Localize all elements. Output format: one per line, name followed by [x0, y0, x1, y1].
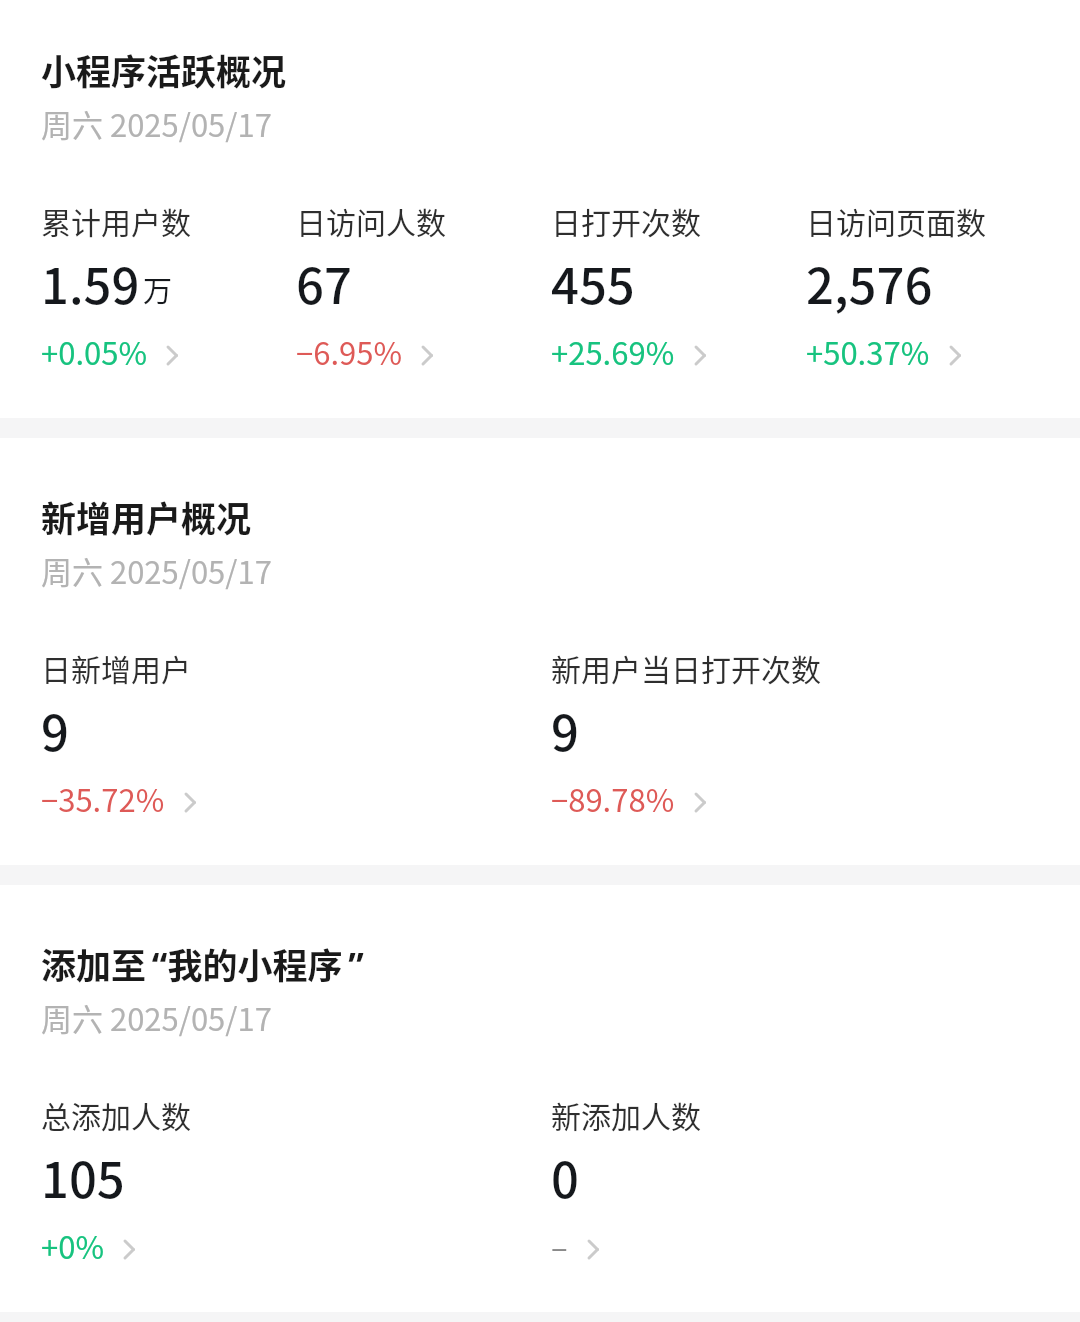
button[interactable]: 累计用户数 1.59+0.05% — [41, 199, 296, 374]
staticText: 万 — [143, 268, 173, 310]
staticText: +0.05% — [41, 329, 147, 374]
staticText: 新添加人数 — [551, 1093, 701, 1136]
button[interactable]: 日访问页面数 2,576+50.37% — [806, 199, 1061, 374]
staticText: 累计用户数 — [41, 199, 191, 242]
staticText: 周六 2025/05/17 — [41, 548, 272, 593]
staticText: 新增用户概况 — [41, 491, 252, 542]
staticText: 日新增用户 — [41, 646, 191, 689]
staticText: +0% — [41, 1223, 104, 1268]
staticText: −6.95% — [296, 329, 402, 374]
button[interactable]: 日新增用户 9−35.72% — [41, 646, 551, 821]
staticText: +25.69% — [551, 329, 675, 374]
staticText: 105 — [41, 1141, 125, 1212]
staticText: 9 — [551, 694, 579, 765]
staticText: 总添加人数 — [41, 1093, 191, 1136]
staticText: 周六 2025/05/17 — [41, 995, 272, 1040]
button[interactable]: 新用户当日打开次数 9−89.78% — [551, 646, 1061, 821]
button[interactable]: 新添加人数 0– — [551, 1093, 1061, 1268]
staticText: 9 — [41, 694, 69, 765]
button[interactable]: 总添加人数 105+0% — [41, 1093, 551, 1268]
staticText: 0 — [551, 1141, 579, 1212]
staticText: 455 — [551, 247, 635, 318]
staticText: 日打开次数 — [551, 199, 701, 242]
staticText: 日访问页面数 — [806, 199, 986, 242]
staticText: 67 — [296, 247, 352, 318]
staticText: 1.59 — [41, 247, 140, 318]
staticText: – — [551, 1223, 568, 1268]
staticText: 小程序活跃概况 — [41, 44, 287, 95]
staticText: +50.37% — [806, 329, 930, 374]
staticText: 日访问人数 — [296, 199, 446, 242]
staticText: 添加至 “我的小程序 ” — [41, 938, 364, 989]
button[interactable]: 日打开次数 455+25.69% — [551, 199, 806, 374]
staticText: −89.78% — [551, 776, 675, 821]
staticText: −35.72% — [41, 776, 165, 821]
staticText: 新用户当日打开次数 — [551, 646, 821, 689]
staticText: 2,576 — [806, 247, 933, 318]
button[interactable]: 日访问人数 67−6.95% — [296, 199, 551, 374]
staticText: 周六 2025/05/17 — [41, 101, 272, 146]
